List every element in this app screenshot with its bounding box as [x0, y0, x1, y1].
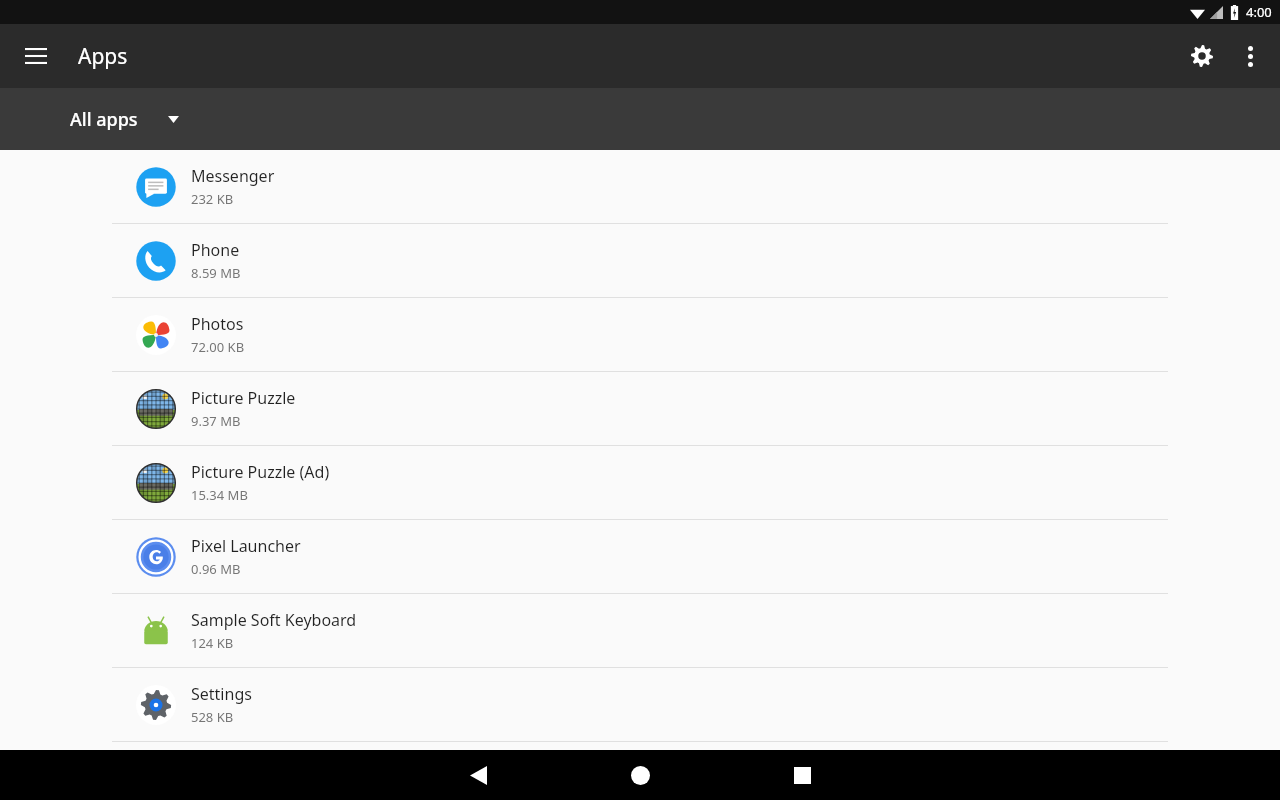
button[interactable]: Pixel Launcher: [0, 520, 1280, 594]
staticText: 124 KB: [191, 634, 234, 652]
button[interactable]: Settings: [0, 668, 1280, 742]
staticText: 4:00: [1246, 3, 1272, 21]
staticText: Messenger: [191, 165, 275, 187]
button[interactable]: Sample Soft Keyboard: [0, 594, 1280, 668]
button[interactable]: More options: [1226, 32, 1274, 80]
staticText: Phone: [191, 239, 240, 261]
staticText: 0.96 MB: [191, 560, 241, 578]
button[interactable]: Settings: [1178, 32, 1226, 80]
button[interactable]: Back: [430, 750, 526, 800]
staticText: Picture Puzzle: [191, 387, 296, 409]
staticText: All apps: [70, 107, 138, 132]
button[interactable]: Photos: [0, 298, 1280, 372]
button[interactable]: Recent apps: [754, 750, 850, 800]
staticText: Pixel Launcher: [191, 535, 301, 557]
staticText: 9.37 MB: [191, 412, 241, 430]
button[interactable]: Picture Puzzle (Ad): [0, 446, 1280, 520]
staticText: 232 KB: [191, 190, 234, 208]
button[interactable]: Phone: [0, 224, 1280, 298]
staticText: Apps: [78, 42, 128, 71]
staticText: Settings: [191, 683, 252, 705]
button[interactable]: All apps: [58, 99, 191, 140]
button[interactable]: Open navigation drawer: [12, 32, 60, 80]
button[interactable]: Messenger: [0, 150, 1280, 224]
staticText: Photos: [191, 313, 244, 335]
button[interactable]: Home: [592, 750, 688, 800]
staticText: 72.00 KB: [191, 338, 245, 356]
staticText: 15.34 MB: [191, 486, 248, 504]
staticText: Picture Puzzle (Ad): [191, 461, 330, 483]
staticText: 528 KB: [191, 708, 234, 726]
staticText: Sample Soft Keyboard: [191, 609, 357, 631]
button[interactable]: Picture Puzzle: [0, 372, 1280, 446]
staticText: 8.59 MB: [191, 264, 241, 282]
